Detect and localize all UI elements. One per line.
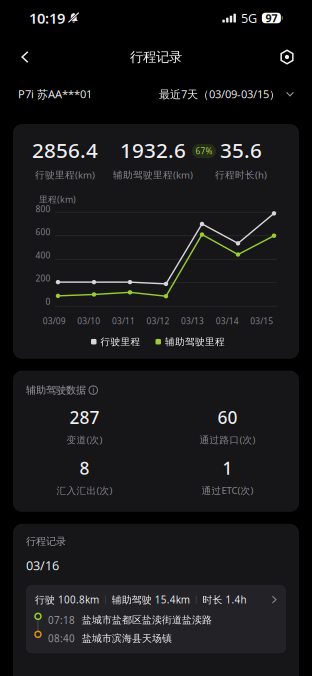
- button[interactable]: P7i 苏AA***01: [16, 80, 94, 107]
- staticText: 35.6: [220, 136, 262, 164]
- staticText: 0: [45, 296, 50, 307]
- staticText: 盐城市盐都区盐渎街道盐渎路: [82, 614, 212, 626]
- staticText: 08:40: [48, 632, 75, 645]
- button[interactable]: 最近7天（03/09-03/15）: [157, 80, 296, 108]
- staticText: 67%: [195, 145, 212, 157]
- staticText: 10:19: [29, 8, 65, 28]
- staticText: 1932.6: [120, 136, 186, 164]
- staticText: 03/13: [181, 315, 204, 327]
- staticText: 03/15: [250, 315, 273, 327]
- staticText: 最近7天（03/09-03/15）: [159, 86, 280, 102]
- staticText: 07:18: [48, 613, 75, 627]
- button[interactable]: Settings: [270, 42, 304, 72]
- staticText: 03/11: [112, 315, 135, 327]
- staticText: 里程(km): [39, 193, 76, 205]
- staticText: i: [92, 385, 94, 396]
- staticText: 变道(次): [66, 433, 102, 446]
- staticText: 行程时长(h): [215, 168, 267, 181]
- staticText: 03/10: [77, 315, 100, 327]
- staticText: 通过ETC(次): [201, 484, 253, 497]
- button[interactable]: Back: [8, 42, 42, 72]
- staticText: 行程记录: [130, 49, 182, 65]
- staticText: 辅助驾驶里程: [165, 336, 225, 348]
- staticText: P7i 苏AA***01: [18, 86, 92, 101]
- staticText: 行驶里程: [100, 336, 140, 348]
- staticText: 1: [222, 456, 232, 480]
- staticText: 60: [217, 405, 237, 429]
- staticText: 5G: [241, 9, 257, 27]
- staticText: 03/09: [43, 315, 66, 327]
- staticText: 600: [35, 226, 50, 238]
- staticText: 汇入汇出(次): [56, 484, 112, 497]
- button[interactable]: 行驶 100.8km: [26, 585, 286, 653]
- staticText: 行驶 100.8km: [35, 593, 99, 606]
- staticText: 200: [35, 273, 50, 284]
- staticText: 时长 1.4h: [203, 593, 247, 606]
- staticText: 通过路口(次): [199, 433, 255, 446]
- staticText: 400: [35, 249, 50, 261]
- staticText: 辅助驾驶里程(km): [113, 168, 193, 181]
- staticText: 800: [35, 203, 50, 215]
- staticText: 辅助驾驶数据: [26, 384, 86, 396]
- staticText: 行程记录: [26, 535, 66, 548]
- staticText: 03/12: [146, 315, 169, 327]
- staticText: 97: [265, 11, 277, 25]
- staticText: 辅助驾驶 15.4km: [112, 593, 190, 606]
- staticText: 行驶里程(km): [35, 168, 95, 181]
- staticText: 8: [79, 456, 89, 480]
- staticText: 2856.4: [32, 136, 98, 164]
- staticText: 03/14: [216, 315, 239, 327]
- staticText: 盐城市滨海县天场镇: [82, 632, 172, 645]
- staticText: 03/16: [26, 557, 59, 574]
- staticText: 287: [69, 405, 99, 429]
